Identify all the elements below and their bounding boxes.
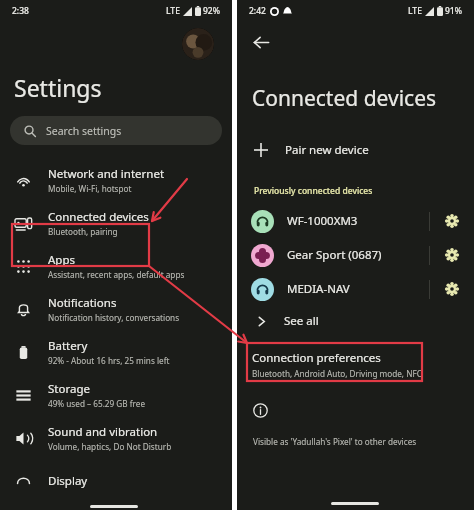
button[interactable]: Storage <box>0 373 232 416</box>
button[interactable]: Device settings for WF-1000XM3 <box>430 204 474 238</box>
staticText: 49% used – 65.29 GB free <box>48 398 146 409</box>
staticText: 92% - About 16 hrs, 25 mins left <box>48 355 170 366</box>
staticText: Assistant, recent apps, default apps <box>48 269 185 280</box>
button[interactable]: Search settings <box>10 116 222 145</box>
staticText: LTE <box>408 5 422 17</box>
button[interactable]: Display <box>0 459 232 502</box>
button[interactable]: WF-1000XM3 <box>237 204 474 238</box>
button[interactable]: Device settings for MEDIA-NAV <box>430 272 474 306</box>
button[interactable]: Battery <box>0 330 232 373</box>
staticText: Network and internet <box>48 166 165 182</box>
button[interactable]: Gear Sport (0687) <box>237 238 474 272</box>
button[interactable]: Device settings for Gear Sport (0687) <box>430 238 474 272</box>
staticText: Pair new device <box>285 142 369 158</box>
staticText: Connected devices <box>48 209 149 225</box>
button[interactable]: Connection preferences <box>237 346 474 383</box>
staticText: Display <box>48 473 88 489</box>
staticText: Apps <box>48 252 76 268</box>
staticText: See all <box>284 313 319 329</box>
staticText: Volume, haptics, Do Not Disturb <box>48 441 172 452</box>
staticText: Battery <box>48 338 88 354</box>
staticText: Visible as 'Yadullah's Pixel' to other d… <box>253 436 417 447</box>
button[interactable]: Pair new device <box>237 135 474 165</box>
staticText: 92% <box>203 5 220 17</box>
staticText: 91% <box>445 5 462 17</box>
button[interactable]: Connected devices <box>0 201 232 244</box>
button[interactable]: Notifications <box>0 287 232 330</box>
staticText: Settings <box>14 72 102 103</box>
button[interactable]: Apps <box>0 244 232 287</box>
button[interactable]: Sound and vibration <box>0 416 232 459</box>
staticText: Mobile, Wi-Fi, hotspot <box>48 183 132 194</box>
staticText: WF-1000XM3 <box>287 213 358 229</box>
staticText: LTE <box>166 5 180 17</box>
staticText: Previously connected devices <box>254 185 373 197</box>
staticText: Notification history, conversations <box>48 312 180 323</box>
staticText: Gear Sport (0687) <box>287 247 382 263</box>
button[interactable]: MEDIA-NAV <box>237 272 474 306</box>
staticText: Connected devices <box>252 84 437 113</box>
staticText: Bluetooth, Android Auto, Driving mode, N… <box>252 368 422 379</box>
button[interactable]: See all <box>237 306 474 336</box>
button[interactable]: Network and internet <box>0 158 232 201</box>
button[interactable]: Account <box>182 28 214 60</box>
staticText: Search settings <box>46 124 122 138</box>
staticText: 2:38 <box>12 5 29 17</box>
staticText: 2:42 <box>249 5 266 17</box>
staticText: Sound and vibration <box>48 424 158 440</box>
staticText: MEDIA-NAV <box>287 281 350 297</box>
staticText: Notifications <box>48 295 117 311</box>
staticText: Storage <box>48 381 90 397</box>
staticText: Bluetooth, pairing <box>48 226 118 237</box>
staticText: Connection preferences <box>252 350 381 366</box>
button[interactable]: Back <box>247 28 275 56</box>
